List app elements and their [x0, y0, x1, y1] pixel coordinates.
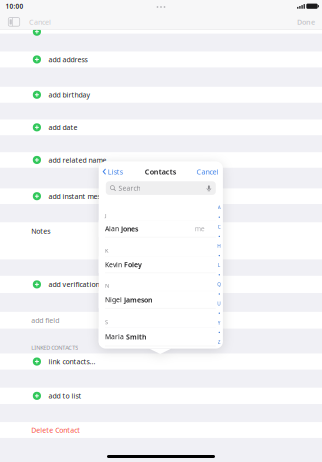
- staticText: add address: [49, 55, 88, 64]
- staticText: C: [218, 223, 221, 230]
- button[interactable]: add verification code: [0, 276, 322, 293]
- staticText: Jones: [121, 224, 138, 233]
- staticText: add to list: [49, 391, 82, 400]
- staticText: Foley: [124, 260, 142, 269]
- button[interactable]: add to list: [0, 388, 322, 404]
- button[interactable]: Maria: [99, 327, 216, 346]
- button[interactable]: Alan: [99, 220, 216, 237]
- button[interactable]: add instant message: [0, 188, 322, 204]
- staticText: add birthday: [49, 90, 91, 99]
- staticText: add related name: [49, 155, 107, 165]
- button[interactable]: add related name: [0, 152, 322, 168]
- staticText: me: [195, 224, 205, 233]
- button[interactable]: add field: [0, 312, 322, 329]
- button[interactable]: Lists: [103, 167, 123, 176]
- staticText: J: [105, 212, 107, 219]
- staticText: LINKED CONTACTS: [31, 344, 78, 351]
- staticText: add date: [49, 123, 78, 132]
- button[interactable]: add date: [0, 119, 322, 135]
- staticText: Lists: [108, 167, 123, 176]
- staticText: 10:00: [5, 2, 23, 10]
- button[interactable]: Delete Contact: [0, 422, 322, 438]
- staticText: add field: [31, 315, 59, 325]
- staticText: link contacts...: [49, 357, 96, 366]
- staticText: Search: [118, 183, 140, 193]
- staticText: Maria: [105, 332, 126, 341]
- button[interactable]: Cancel: [196, 167, 218, 176]
- staticText: Alan: [105, 224, 121, 233]
- staticText: add verification code: [49, 280, 117, 289]
- button[interactable]: Done: [297, 17, 315, 27]
- button[interactable]: Kevin: [99, 256, 216, 273]
- staticText: Delete Contact: [31, 425, 80, 435]
- staticText: Jameson: [124, 295, 152, 304]
- button[interactable]: Toggle Sidebar: [8, 18, 20, 26]
- staticText: U: [217, 300, 221, 307]
- staticText: N: [105, 282, 109, 289]
- button[interactable]: add birthday: [0, 87, 322, 103]
- staticText: Cancel: [29, 17, 51, 27]
- button[interactable]: Nigel: [99, 291, 216, 308]
- button[interactable]: Cancel: [29, 17, 51, 27]
- staticText: Y: [218, 319, 221, 326]
- staticText: Kevin: [105, 260, 124, 269]
- staticText: Nigel: [105, 295, 124, 304]
- staticText: K: [105, 247, 108, 254]
- button[interactable]: add address: [0, 51, 322, 67]
- staticText: H: [217, 243, 221, 249]
- staticText: Smith: [126, 332, 146, 341]
- button[interactable]: link contacts...: [0, 353, 322, 370]
- staticText: A: [218, 204, 221, 211]
- staticText: S: [105, 318, 108, 326]
- staticText: Contacts: [145, 167, 177, 176]
- staticText: Notes: [31, 226, 50, 236]
- staticText: Cancel: [196, 167, 218, 176]
- staticText: L: [218, 262, 221, 268]
- staticText: Q: [217, 281, 221, 288]
- staticText: Z: [218, 339, 221, 345]
- staticText: Done: [297, 17, 315, 27]
- staticText: add instant message: [49, 191, 116, 201]
